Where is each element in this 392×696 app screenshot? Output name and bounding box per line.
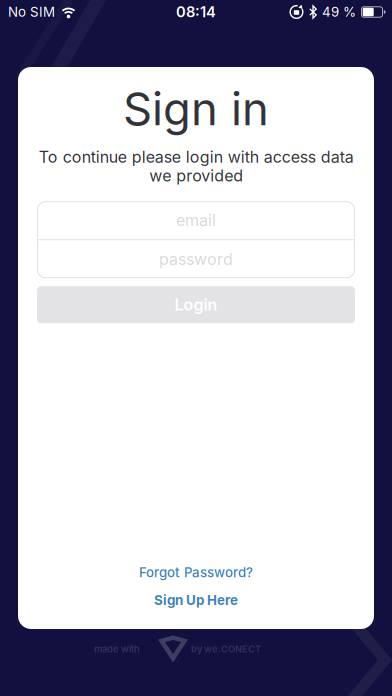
staticText: password	[159, 250, 233, 269]
button[interactable]: Sign Up Here	[154, 580, 238, 608]
button[interactable]: Forgot Password?	[139, 564, 253, 580]
staticText: Forgot Password?	[139, 564, 253, 580]
staticText: 49 %	[322, 4, 356, 20]
staticText: To continue please login with access dat…	[38, 147, 353, 185]
staticText: Sign Up Here	[154, 592, 238, 608]
staticText: 08:14	[176, 3, 216, 21]
staticText: made with	[94, 643, 140, 654]
staticText: email	[176, 211, 216, 230]
staticText: Login	[174, 295, 217, 314]
button[interactable]: password	[37, 240, 355, 278]
staticText: Sign in	[123, 82, 269, 135]
staticText: by we.CONECT	[191, 643, 261, 654]
button[interactable]: email	[37, 201, 355, 239]
staticText: No SIM	[8, 4, 55, 20]
button[interactable]: Login	[37, 286, 355, 323]
